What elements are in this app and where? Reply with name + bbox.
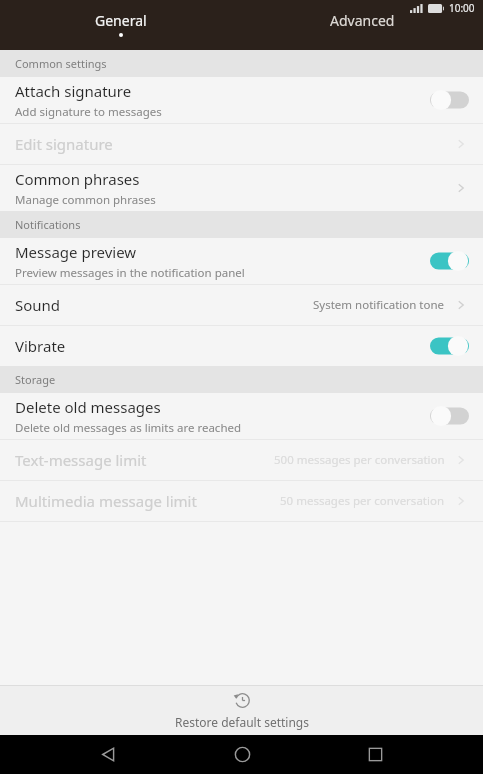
staticText: Message preview <box>15 242 137 262</box>
button[interactable]: General <box>0 0 241 47</box>
staticText: Multimedia message limit <box>15 491 197 511</box>
staticText: 500 messages per conversation <box>274 452 445 468</box>
staticText: Attach signature <box>15 81 132 101</box>
button[interactable]: Attach signature <box>0 77 483 123</box>
button[interactable]: Common phrases <box>0 165 483 211</box>
staticText: Sound <box>15 295 61 315</box>
staticText: Edit signature <box>15 134 113 154</box>
staticText: 50 messages per conversation <box>280 493 445 509</box>
staticText: Vibrate <box>15 336 66 356</box>
button[interactable]: Back <box>82 735 134 774</box>
staticText: Common phrases <box>15 169 140 189</box>
staticText: Storage <box>15 372 56 387</box>
staticText: Delete old messages as limits are reache… <box>15 420 242 436</box>
button[interactable]: Text-message limit <box>0 440 483 480</box>
button[interactable]: Edit signature <box>0 124 483 164</box>
staticText: Text-message limit <box>15 450 147 470</box>
button[interactable]: Message preview <box>0 238 483 284</box>
staticText: Notifications <box>15 217 81 232</box>
staticText: Delete old messages <box>15 397 161 417</box>
staticText: Common settings <box>15 56 107 71</box>
staticText: System notification tone <box>313 297 445 313</box>
staticText: Advanced <box>330 11 395 30</box>
staticText: Preview messages in the notification pan… <box>15 265 245 281</box>
staticText: Manage common phrases <box>15 192 156 208</box>
button[interactable]: Advanced <box>241 0 483 47</box>
button[interactable]: Delete old messages <box>0 393 483 439</box>
staticText: 10:00 <box>449 1 475 15</box>
button[interactable]: Restore default settings <box>0 686 483 735</box>
staticText: Restore default settings <box>175 714 309 730</box>
button[interactable]: Multimedia message limit <box>0 481 483 521</box>
staticText: General <box>95 11 147 30</box>
staticText: Add signature to messages <box>15 104 162 120</box>
button[interactable]: Recents <box>349 735 401 774</box>
button[interactable]: Sound <box>0 285 483 325</box>
button[interactable]: Home <box>216 735 268 774</box>
button[interactable]: Vibrate <box>0 326 483 366</box>
